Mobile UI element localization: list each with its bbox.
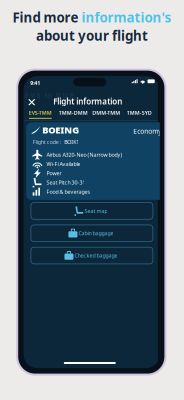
staticText: BOEING [42,124,79,136]
staticText: Flight code : [33,138,61,145]
button[interactable]: Cabin baggage [31,225,153,242]
button[interactable]: Seat map [31,203,153,219]
button[interactable]: Checked baggage [31,247,153,264]
staticText: Wi-Fi Available [46,160,80,167]
staticText: TMM-SYD [127,109,152,116]
staticText: Cabin baggage [78,230,113,237]
button[interactable]: TMM-SYD [123,108,156,120]
staticText: Seat Pitch 30-31 [46,179,85,186]
staticText: Flight information [53,96,122,107]
staticText: Power [46,170,61,177]
staticText: information's [82,8,172,26]
staticText: BOIK1 [64,138,79,145]
staticText: Food & beverages [46,188,90,195]
staticText: DMM-TMM [92,109,120,116]
button[interactable]: DMM-TMM [90,108,123,120]
staticText: Economy [133,127,161,136]
staticText: Airbus A320-Neo (Narrow body) [46,151,122,158]
staticText: Checked baggage [74,252,117,259]
staticText: EVS-TMM [29,109,52,116]
staticText: TMM-DMM [59,109,88,116]
staticText: Seat map [84,207,107,214]
staticText: E V S to D U B [25,91,74,100]
staticText: Find more [12,8,78,26]
button[interactable]: Close [26,96,38,108]
button[interactable]: EVS-TMM [24,108,57,120]
button[interactable]: TMM-DMM [57,108,90,120]
staticText: about your flight [36,27,148,44]
staticText: 9:41 [30,79,40,86]
